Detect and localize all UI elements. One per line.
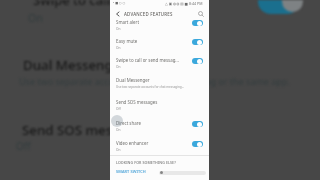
staticText: On xyxy=(116,27,121,31)
staticText: Video enhancer xyxy=(116,140,149,146)
button[interactable]: Toggle on xyxy=(192,39,203,45)
button[interactable]: Easy mute xyxy=(110,35,209,54)
button[interactable]: Toggle on xyxy=(192,20,203,26)
button[interactable]: Toggle on xyxy=(192,58,203,64)
button[interactable]: Toggle on xyxy=(192,121,203,127)
staticText: Send SOS messages xyxy=(116,99,158,105)
staticText: On xyxy=(116,46,121,50)
staticText: △ ▣ ◍◍ ▤ ■ 8:44 PM xyxy=(165,1,203,6)
staticText: Dual Messenger xyxy=(116,77,150,83)
button[interactable]: Smart alert xyxy=(110,16,209,35)
staticText: ADVANCED FEATURES xyxy=(124,11,173,17)
staticText: On xyxy=(116,148,121,152)
staticText: SMART SWITCH xyxy=(116,169,146,174)
staticText: Use two separate accounts for chat messa… xyxy=(19,75,290,87)
button[interactable]: Send SOS messages xyxy=(110,96,209,115)
button[interactable]: Direct share xyxy=(110,117,209,136)
staticText: Swipe to call xyxy=(33,0,111,9)
button[interactable]: Swipe to call or send messag... xyxy=(110,54,209,73)
button[interactable]: SMART SWITCH xyxy=(114,167,148,176)
button[interactable]: Video enhancer xyxy=(110,137,209,156)
staticText: Swipe to call or send messag... xyxy=(116,57,179,63)
staticText: LOOKING FOR SOMETHING ELSE? xyxy=(116,160,176,165)
button[interactable]: Search xyxy=(195,8,207,20)
staticText: Send SOS mes xyxy=(22,121,113,139)
staticText: Off xyxy=(116,107,121,111)
staticText: Smart alert xyxy=(116,19,139,25)
staticText: • ■ ○ ○ xyxy=(113,1,126,5)
button[interactable]: Dual Messenger xyxy=(110,74,209,93)
staticText: Use two separate accounts for chat messa… xyxy=(116,85,185,89)
staticText: On xyxy=(116,128,121,132)
staticText: Direct share xyxy=(116,120,141,126)
staticText: On xyxy=(116,65,121,69)
staticText: Dual Messeng xyxy=(23,56,113,74)
button[interactable]: Back xyxy=(112,8,124,20)
button[interactable]: Toggle on xyxy=(192,141,203,147)
staticText: Easy mute xyxy=(116,38,138,44)
